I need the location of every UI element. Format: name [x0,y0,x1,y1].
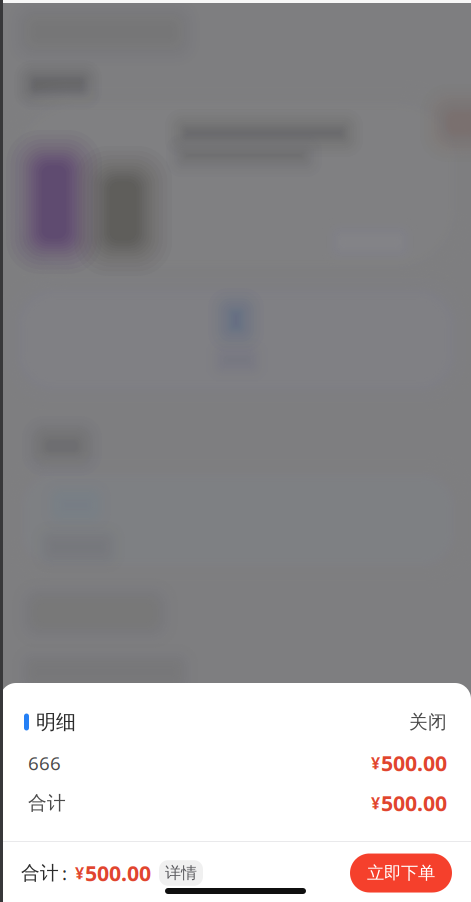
staticText: ¥ [371,752,380,774]
button[interactable]: 详情 [159,860,203,886]
staticText: 详情 [165,863,197,883]
staticText: 立即下单 [367,862,435,884]
button[interactable]: 立即下单 [350,853,452,892]
staticText: 合计 [28,791,66,814]
staticText: 500.00 [381,749,447,777]
staticText: ¥ [371,792,380,814]
staticText: 关闭 [409,710,447,733]
staticText: 666 [28,751,61,775]
button[interactable]: 关闭 [393,702,447,741]
staticText: ¥ [75,862,84,884]
staticText: 500.00 [85,859,151,887]
staticText: 明细 [36,710,76,734]
staticText: 合计 [21,861,59,884]
staticText: : [62,861,67,885]
staticText: 500.00 [381,789,447,817]
